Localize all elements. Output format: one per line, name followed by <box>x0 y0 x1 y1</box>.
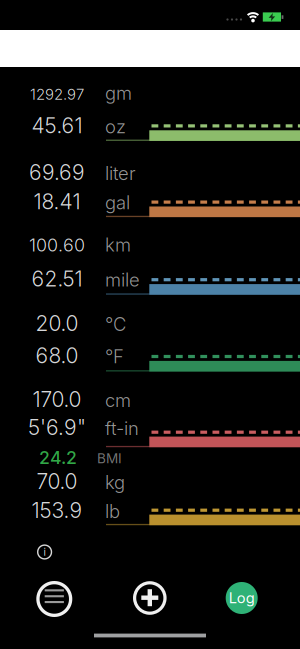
staticText: mile <box>105 269 140 291</box>
staticText: liter <box>105 162 136 184</box>
staticText: cm <box>105 389 131 411</box>
button[interactable]: Log <box>222 578 262 618</box>
staticText: 170.0 <box>32 387 81 412</box>
staticText: °F <box>105 345 124 368</box>
staticText: lb <box>105 500 120 522</box>
staticText: i <box>44 546 46 558</box>
staticText: 69.69 <box>29 160 85 185</box>
button[interactable]: Menu <box>34 579 74 619</box>
staticText: gal <box>105 191 130 214</box>
staticText: kg <box>105 471 125 493</box>
staticText: 100.60 <box>29 234 85 256</box>
staticText: gm <box>105 82 132 104</box>
button[interactable]: Add <box>130 578 170 618</box>
staticText: oz <box>105 115 126 138</box>
staticText: 18.41 <box>33 189 80 214</box>
staticText: 45.61 <box>31 113 82 138</box>
staticText: 153.9 <box>31 498 82 523</box>
staticText: 1292.97 <box>30 85 84 103</box>
staticText: 62.51 <box>31 266 82 292</box>
staticText: km <box>105 234 131 256</box>
staticText: °C <box>105 313 126 335</box>
staticText: Log <box>229 589 255 607</box>
staticText: BMI <box>97 450 122 467</box>
staticText: 70.0 <box>36 469 77 494</box>
button[interactable]: Info <box>32 539 58 565</box>
staticText: 68.0 <box>35 343 78 368</box>
staticText: 5'6.9" <box>28 415 86 440</box>
staticText: 20.0 <box>35 311 78 336</box>
staticText: ft-in <box>105 417 139 439</box>
staticText: 24.2 <box>39 447 77 468</box>
